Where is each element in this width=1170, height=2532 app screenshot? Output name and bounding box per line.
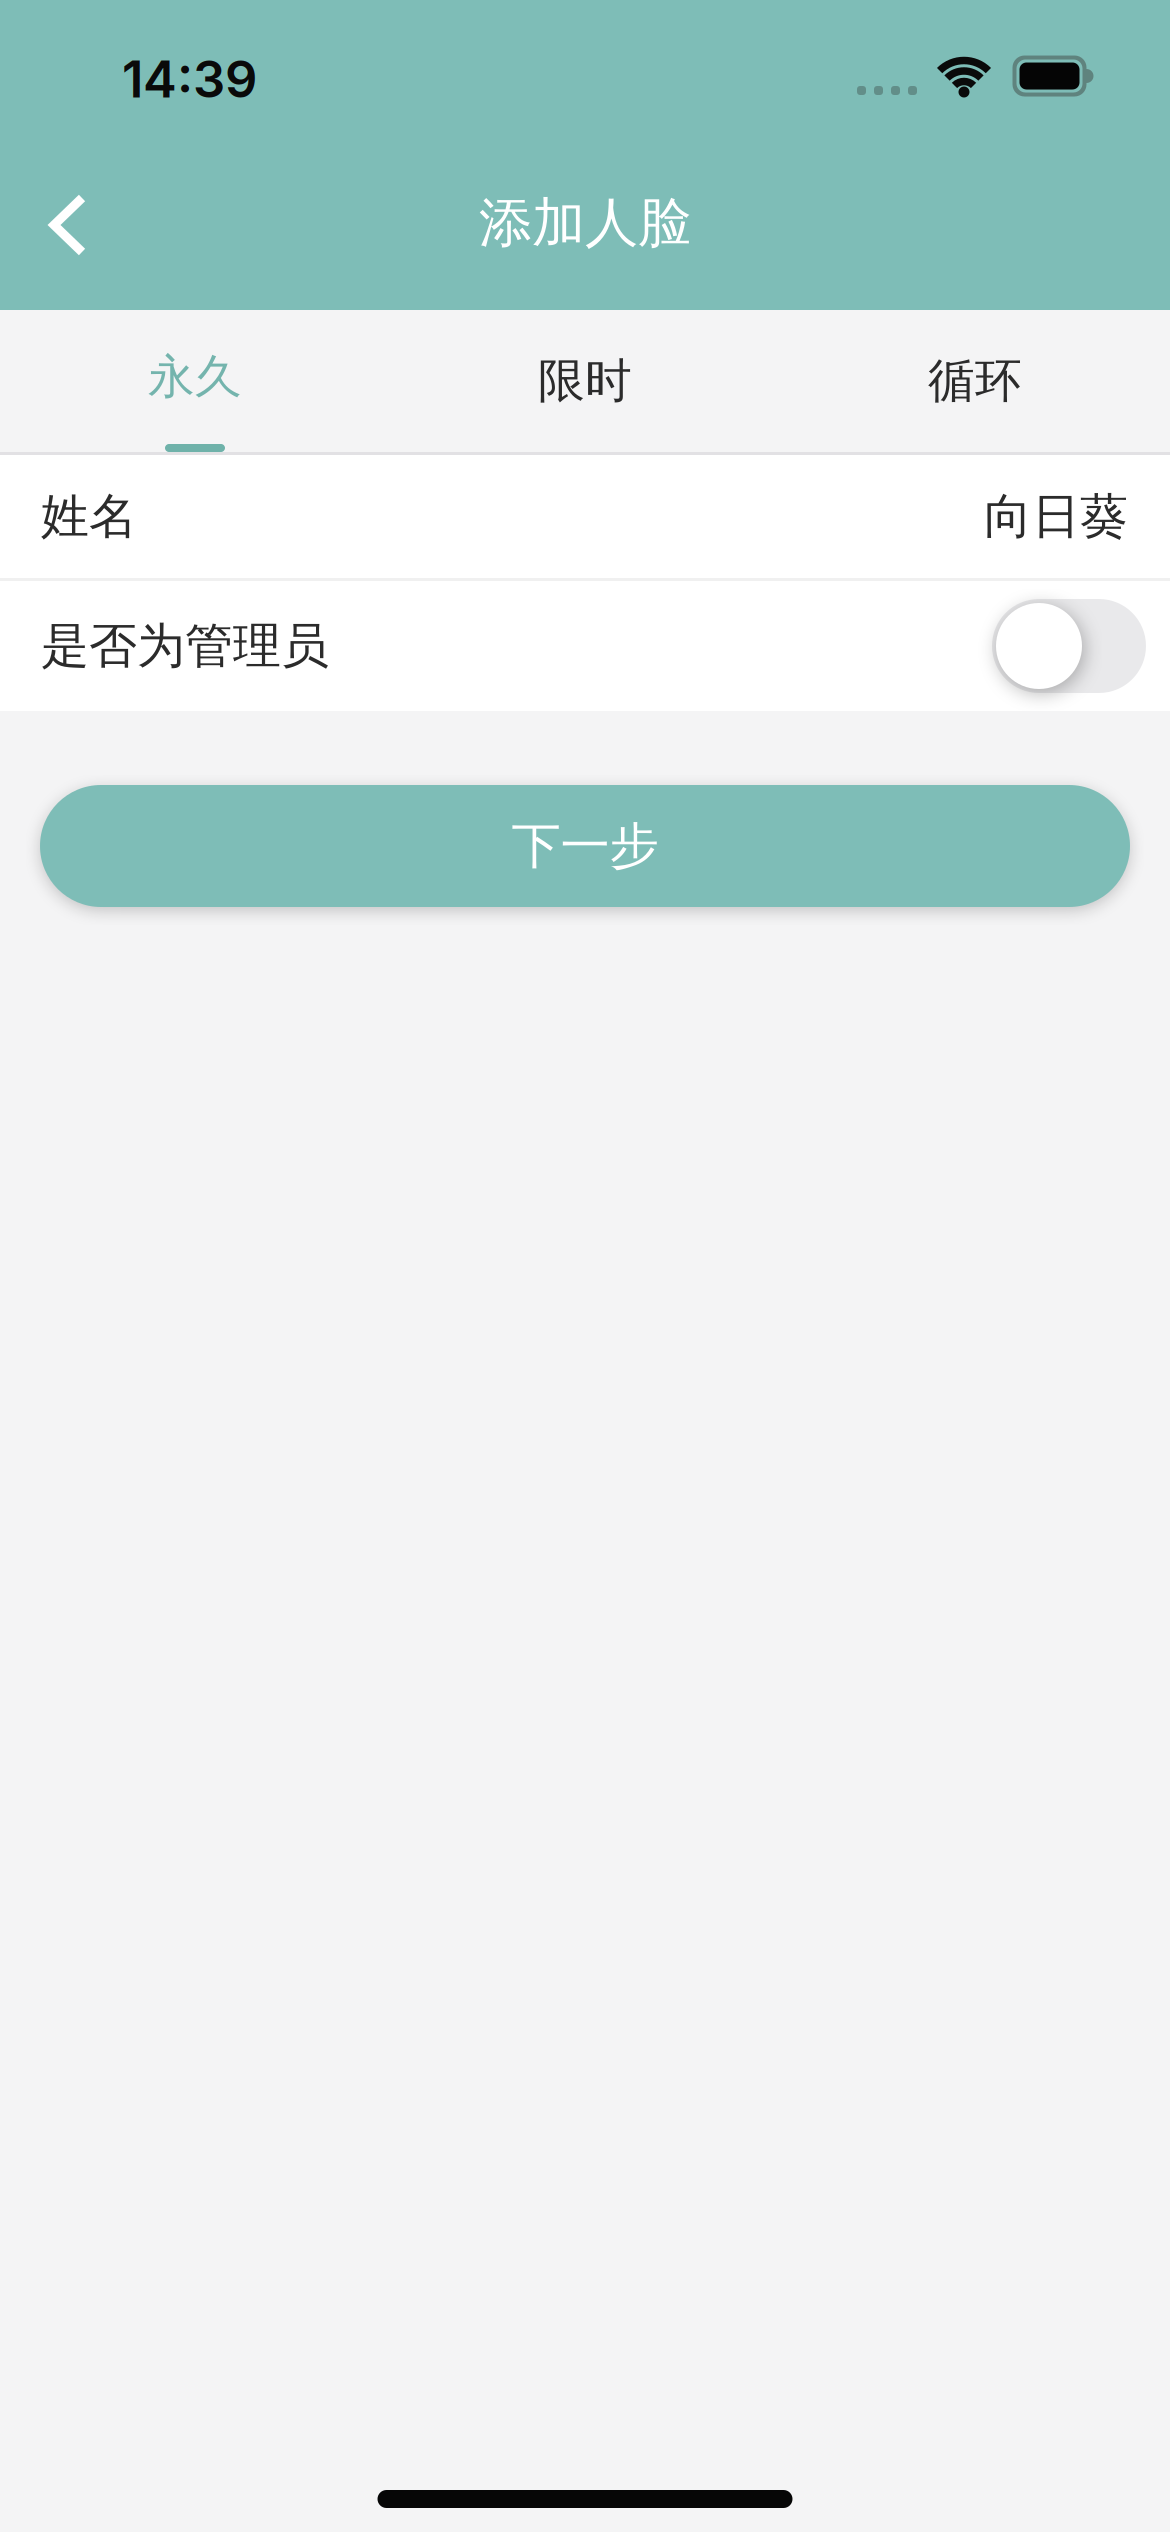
button[interactable]: 下一步 — [0, 785, 1170, 907]
staticText: 永久 — [148, 348, 242, 406]
staticText: 姓名 — [41, 486, 137, 547]
staticText: 是否为管理员 — [41, 616, 329, 676]
staticText: 向日葵 — [984, 486, 1128, 547]
button[interactable]: 永久 — [0, 310, 390, 452]
button[interactable]: Back — [0, 144, 116, 296]
staticText: 循环 — [928, 352, 1022, 410]
staticText: 下一步 — [511, 815, 658, 877]
staticText: 限时 — [538, 352, 632, 410]
button[interactable]: 循环 — [780, 310, 1170, 452]
staticText: 14:39 — [122, 48, 257, 110]
button[interactable]: 是否为管理员 — [992, 599, 1146, 693]
button[interactable]: 限时 — [390, 310, 780, 452]
button[interactable]: 姓名 — [0, 455, 1170, 578]
staticText: 添加人脸 — [479, 189, 691, 257]
